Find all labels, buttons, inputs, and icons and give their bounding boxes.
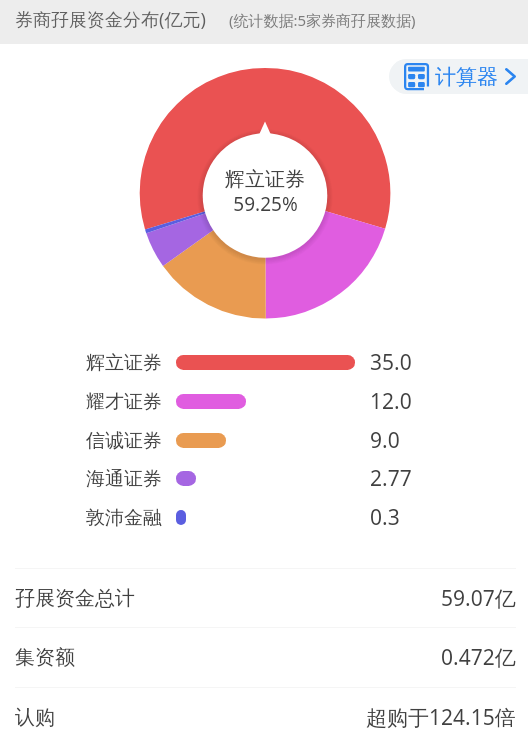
staticText: 券商孖展资金分布(亿元) — [15, 7, 206, 32]
staticText: 海通证券 — [86, 467, 162, 491]
staticText: 敦沛金融 — [86, 506, 162, 530]
button[interactable]: 认购 — [0, 688, 528, 742]
staticText: 59.07亿 — [441, 584, 516, 613]
staticText: 超购于124.15倍 — [366, 703, 516, 732]
staticText: 12.0 — [370, 387, 412, 416]
button[interactable]: 辉立证券 — [0, 343, 528, 382]
staticText: 耀才证券 — [86, 390, 162, 414]
button[interactable]: 计算器 — [389, 59, 528, 94]
staticText: 计算器 — [435, 64, 498, 90]
staticText: 2.77 — [370, 464, 412, 493]
staticText: 信诚证券 — [86, 429, 162, 453]
staticText: 集资额 — [15, 645, 75, 670]
button[interactable]: 耀才证券 — [0, 382, 528, 421]
button[interactable]: 孖展资金总计 — [0, 569, 528, 628]
staticText: 辉立证券 — [225, 167, 305, 192]
staticText: 35.0 — [370, 348, 412, 377]
staticText: (统计数据:5家券商孖展数据) — [229, 10, 416, 30]
staticText: 0.472亿 — [441, 643, 516, 672]
staticText: 9.0 — [370, 426, 400, 455]
button[interactable]: 敦沛金融 — [0, 498, 528, 537]
button[interactable]: 信诚证券 — [0, 421, 528, 460]
button[interactable]: 海通证券 — [0, 459, 528, 498]
staticText: 0.3 — [370, 503, 400, 532]
button[interactable]: 集资额 — [0, 628, 528, 687]
staticText: 59.25% — [233, 191, 298, 217]
staticText: 辉立证券 — [86, 351, 162, 375]
staticText: 孖展资金总计 — [15, 586, 135, 611]
other: 计算器 — [404, 63, 429, 90]
staticText: 认购 — [15, 705, 55, 730]
